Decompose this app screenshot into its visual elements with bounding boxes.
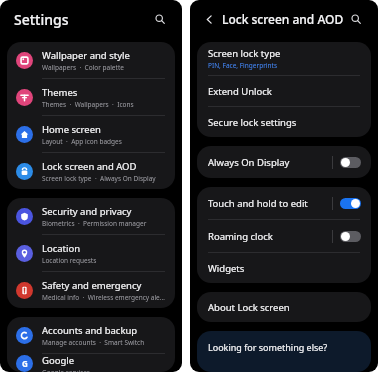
staticText: Manage accounts · Smart Switch xyxy=(42,338,145,347)
staticText: Biometrics · Permission manager xyxy=(42,219,147,228)
staticText: Settings xyxy=(14,10,69,29)
staticText: Screen lock type · Always On Display xyxy=(42,174,156,183)
button[interactable]: Touch and hold to edit xyxy=(197,187,371,220)
staticText: Google services xyxy=(42,368,90,372)
button[interactable]: Secure lock settings xyxy=(197,107,371,137)
staticText: Safety and emergency xyxy=(42,279,142,292)
staticText: Looking for something else? xyxy=(208,341,328,353)
button[interactable]: Search xyxy=(149,8,171,30)
staticText: Secure lock settings xyxy=(208,116,297,129)
staticText: Widgets xyxy=(208,262,245,275)
button[interactable]: Wallpaper and style xyxy=(7,42,175,79)
staticText: About Lock screen xyxy=(208,301,290,314)
staticText: Extend Unlock xyxy=(208,85,272,98)
staticText: Themes xyxy=(42,86,78,99)
button[interactable]: Widgets xyxy=(197,253,371,283)
button[interactable]: Safety and emergency xyxy=(7,272,175,308)
staticText: Lock screen and AOD xyxy=(42,160,137,173)
button[interactable]: Switch off xyxy=(340,157,361,168)
staticText: Medical info · Wireless emergency alerts xyxy=(42,293,167,302)
staticText: Themes · Wallpapers · Icons xyxy=(42,100,134,109)
staticText: Wallpapers · Color palette xyxy=(42,63,124,72)
button[interactable]: Location xyxy=(7,235,175,272)
staticText: Accounts and backup xyxy=(42,324,138,337)
button[interactable]: Switch on xyxy=(340,198,361,209)
button[interactable]: Screen lock type xyxy=(197,42,371,76)
button[interactable]: About Lock screen xyxy=(197,292,371,322)
staticText: Layout · App icon badges xyxy=(42,137,122,146)
staticText: Screen lock type xyxy=(208,47,281,60)
staticText: Security and privacy xyxy=(42,205,132,218)
staticText: Touch and hold to edit xyxy=(208,197,332,210)
staticText: Location xyxy=(42,242,81,255)
button[interactable]: Search xyxy=(345,8,367,30)
staticText: G xyxy=(22,358,28,369)
staticText: PIN, Face, Fingerprints xyxy=(208,61,277,70)
staticText: Wallpaper and style xyxy=(42,49,130,62)
staticText: Lock screen and AOD xyxy=(222,11,344,27)
staticText: Location requests xyxy=(42,256,97,265)
button[interactable]: Lock screen and AOD xyxy=(7,153,175,189)
button[interactable]: Back xyxy=(199,9,219,29)
button[interactable]: Security and privacy xyxy=(7,198,175,235)
button[interactable]: Accounts and backup xyxy=(7,317,175,354)
button[interactable]: Always On Display xyxy=(197,146,371,178)
button[interactable]: Edit Lock screen xyxy=(208,362,371,364)
staticText: Google xyxy=(42,354,75,367)
staticText: Always On Display xyxy=(208,156,332,169)
staticText: Home screen xyxy=(42,123,101,136)
button[interactable]: G xyxy=(7,354,175,372)
button[interactable]: Themes xyxy=(7,79,175,116)
button[interactable]: Extend Unlock xyxy=(197,76,371,107)
staticText: Roaming clock xyxy=(208,230,332,243)
button[interactable]: Roaming clock xyxy=(197,220,371,253)
button[interactable]: Home screen xyxy=(7,116,175,153)
button[interactable]: Switch off xyxy=(340,231,361,242)
